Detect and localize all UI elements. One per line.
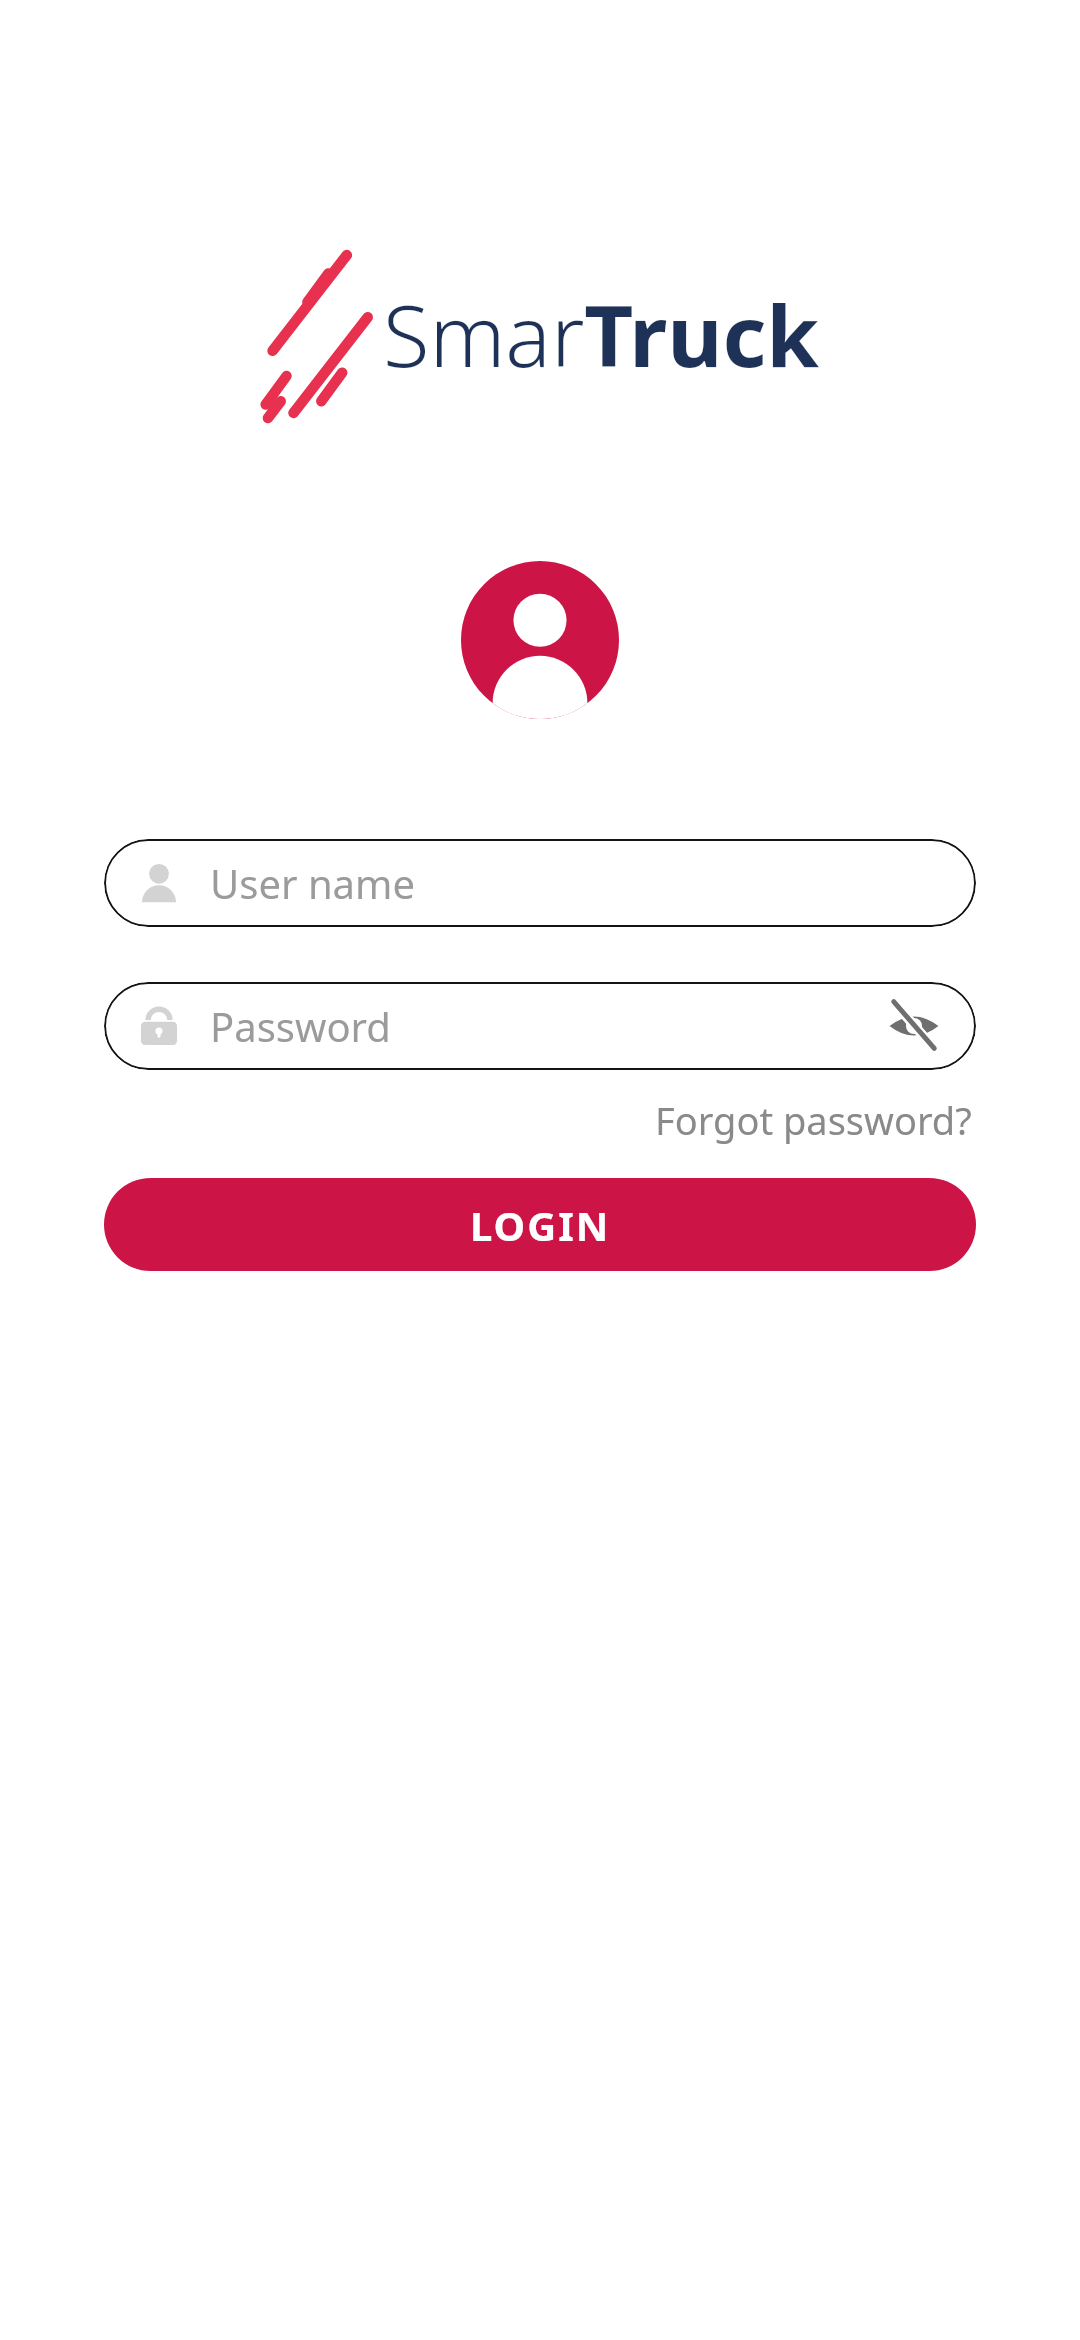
button[interactable]: Forgot password? [651,1088,976,1152]
button[interactable]: LOGIN [104,1178,976,1271]
staticText: Password [210,999,391,1053]
staticText: Forgot password? [655,1094,972,1146]
staticText: SmarTruck [383,276,819,392]
button[interactable]: Show password [886,998,942,1054]
button[interactable]: User name [104,839,976,927]
staticText: LOGIN [470,1198,611,1252]
button[interactable]: Password [104,982,976,1070]
staticText: User name [210,856,415,910]
